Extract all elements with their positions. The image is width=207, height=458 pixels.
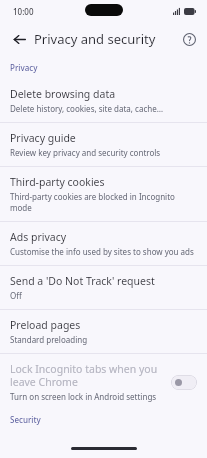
staticText: Privacy [10, 62, 38, 73]
button[interactable]: Back [6, 26, 32, 52]
staticText: Customise the info used by sites to show… [10, 246, 194, 257]
staticText: Ads privacy [10, 230, 67, 244]
staticText: Preload pages [10, 318, 81, 332]
staticText: Third-party cookies are blocked in Incog… [10, 191, 195, 213]
button[interactable]: Lock Incognito tabs when you leave Chrom… [0, 354, 207, 408]
staticText: Third-party cookies [10, 175, 105, 189]
button[interactable]: Help [177, 27, 201, 51]
button[interactable]: Lock Incognito tabs toggle [171, 375, 197, 390]
staticText: Security [10, 414, 41, 425]
staticText: Send a 'Do Not Track' request [10, 274, 155, 288]
button[interactable]: Delete browsing data [0, 79, 207, 122]
staticText: Delete history, cookies, site data, cach… [10, 103, 164, 114]
button[interactable]: Send a 'Do Not Track' request [0, 266, 207, 309]
button[interactable]: Privacy guide [0, 123, 207, 166]
staticText: Review key privacy and security controls [10, 147, 161, 158]
staticText: Privacy and security [34, 30, 156, 48]
staticText: Off [10, 290, 22, 301]
staticText: Standard preloading [10, 334, 88, 345]
staticText: 10:00 [13, 6, 34, 17]
staticText: Lock Incognito tabs when you leave Chrom… [10, 362, 165, 389]
button[interactable]: Third-party cookies [0, 167, 207, 221]
staticText: Privacy guide [10, 131, 76, 145]
staticText: Delete browsing data [10, 87, 116, 101]
staticText: Turn on screen lock in Android settings [10, 391, 157, 402]
button[interactable]: Ads privacy [0, 222, 207, 265]
button[interactable]: Preload pages [0, 310, 207, 353]
